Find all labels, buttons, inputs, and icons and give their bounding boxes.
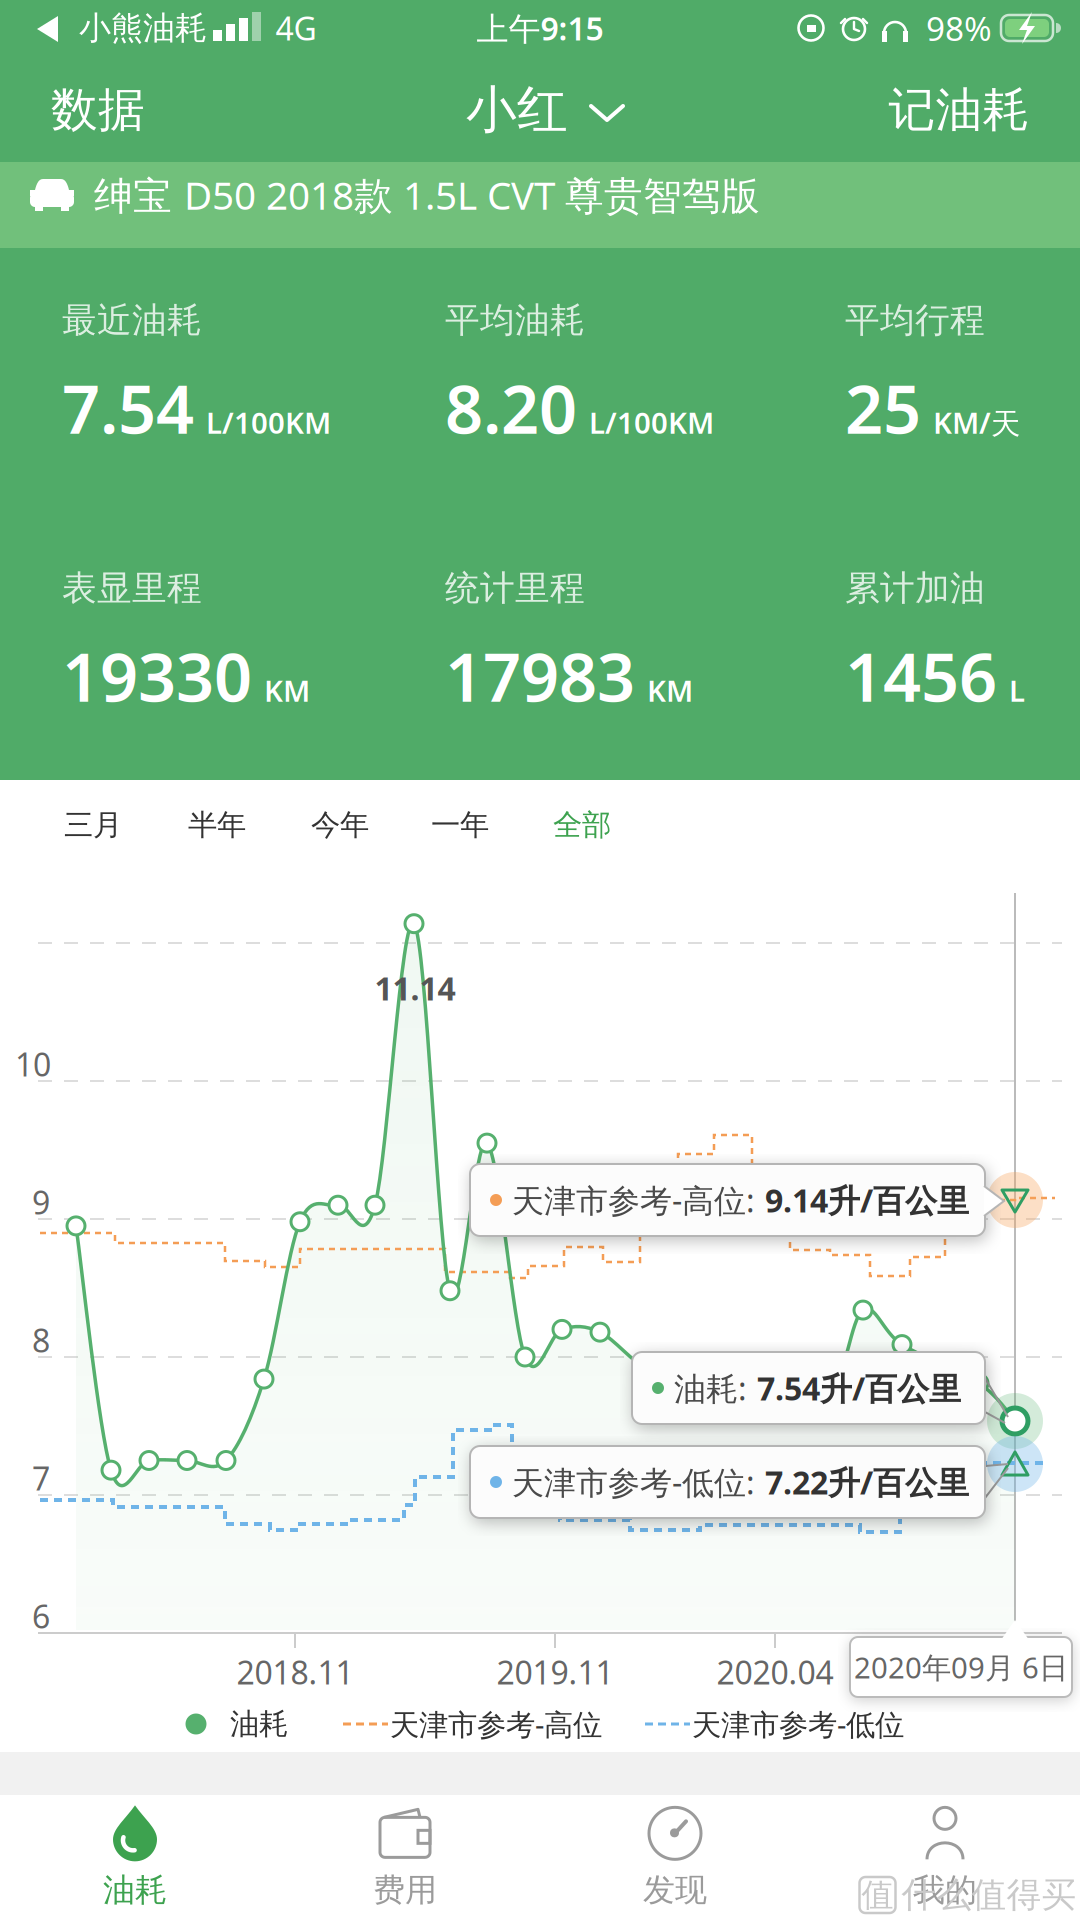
staticText: L/100KM bbox=[589, 403, 714, 442]
staticText: 三月 bbox=[64, 807, 122, 843]
staticText: 费用 bbox=[373, 1870, 437, 1910]
staticText: 天津市参考-高位 bbox=[390, 1704, 602, 1743]
staticText: KM/天 bbox=[933, 403, 1020, 442]
staticText: 小熊油耗 bbox=[79, 8, 207, 48]
staticText: 4G bbox=[275, 7, 316, 49]
staticText: 值 bbox=[861, 1875, 893, 1915]
staticText: 19330 bbox=[62, 632, 252, 720]
staticText: 半年 bbox=[188, 807, 246, 843]
button[interactable]: 绅宝 D50 2018款 1.5L CVT 尊贵智驾版 bbox=[0, 162, 1080, 248]
button[interactable]: 油耗 bbox=[0, 1795, 270, 1920]
staticText: 小红 bbox=[466, 79, 568, 141]
button[interactable]: 全部 bbox=[532, 780, 632, 870]
button[interactable]: 记油耗 bbox=[869, 70, 1049, 150]
staticText: 9 bbox=[32, 1181, 50, 1223]
button[interactable]: 发现 bbox=[540, 1795, 810, 1920]
staticText: 平均油耗 bbox=[445, 299, 585, 342]
staticText: 记油耗 bbox=[888, 81, 1029, 139]
button[interactable]: 一年 bbox=[410, 780, 510, 870]
staticText: 统计里程 bbox=[445, 567, 585, 610]
staticText: 7.22升/百公里 bbox=[765, 1461, 969, 1503]
staticText: 天津市参考-高位: bbox=[512, 1179, 755, 1221]
button[interactable]: 小红 bbox=[441, 70, 631, 150]
staticText: 一年 bbox=[431, 807, 489, 843]
staticText: 2020年09月 6日 bbox=[854, 1647, 1068, 1686]
staticText: 上午9:15 bbox=[476, 7, 603, 49]
staticText: 平均行程 bbox=[845, 299, 985, 342]
staticText: 7 bbox=[32, 1457, 50, 1499]
staticText: KM bbox=[647, 671, 693, 710]
staticText: 表显里程 bbox=[62, 567, 202, 610]
button[interactable]: 三月 bbox=[43, 780, 143, 870]
staticText: 油耗 bbox=[103, 1870, 167, 1910]
staticText: 10 bbox=[15, 1043, 51, 1085]
button[interactable]: 费用 bbox=[270, 1795, 540, 1920]
staticText: 7.54升/百公里 bbox=[757, 1367, 961, 1409]
staticText: 2018.11 bbox=[236, 1651, 353, 1693]
staticText: 我的 bbox=[913, 1870, 977, 1910]
staticText: 11.14 bbox=[374, 967, 455, 1009]
staticText: 天津市参考-低位 bbox=[692, 1704, 904, 1743]
staticText: 8.20 bbox=[445, 364, 577, 452]
staticText: 7.54 bbox=[62, 364, 194, 452]
staticText: KM bbox=[264, 671, 310, 710]
staticText: 17983 bbox=[445, 632, 635, 720]
staticText: 98% bbox=[926, 6, 992, 50]
staticText: 今年 bbox=[311, 807, 369, 843]
staticText: 数据 bbox=[51, 81, 145, 139]
staticText: 2019.11 bbox=[496, 1651, 613, 1693]
staticText: 油耗: bbox=[674, 1367, 747, 1409]
staticText: 什么值得买 bbox=[901, 1874, 1076, 1916]
staticText: 累计加油 bbox=[845, 567, 985, 610]
staticText: 油耗 bbox=[230, 1706, 288, 1742]
staticText: 25 bbox=[845, 364, 921, 452]
staticText: L bbox=[1009, 671, 1025, 710]
staticText: 9.14升/百公里 bbox=[765, 1179, 969, 1221]
staticText: 天津市参考-低位: bbox=[512, 1461, 755, 1503]
staticText: 2020.04 bbox=[716, 1651, 833, 1693]
staticText: 全部 bbox=[553, 807, 611, 843]
button[interactable]: 我的 bbox=[810, 1795, 1080, 1920]
button[interactable]: 今年 bbox=[290, 780, 390, 870]
staticText: 绅宝 D50 2018款 1.5L CVT 尊贵智驾版 bbox=[94, 169, 760, 220]
staticText: 1456 bbox=[845, 632, 997, 720]
staticText: L/100KM bbox=[206, 403, 331, 442]
staticText: 6 bbox=[32, 1595, 50, 1637]
staticText: 最近油耗 bbox=[62, 299, 202, 342]
staticText: 发现 bbox=[643, 1870, 707, 1910]
button[interactable]: 数据 bbox=[23, 70, 173, 150]
button[interactable]: 半年 bbox=[167, 780, 267, 870]
staticText: 8 bbox=[32, 1319, 50, 1361]
